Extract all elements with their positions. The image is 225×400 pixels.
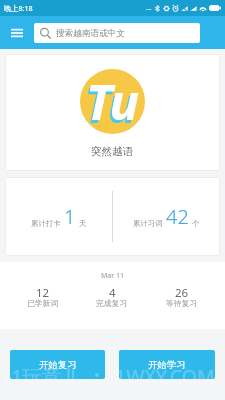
staticText: 开始学习: [148, 359, 186, 371]
button[interactable]: 26: [147, 285, 217, 311]
button[interactable]: Tu: [5, 54, 220, 171]
button[interactable]: 开始复习: [10, 350, 105, 379]
staticText: ...: [146, 3, 152, 13]
staticText: 12: [36, 285, 50, 301]
staticText: 26: [175, 285, 189, 301]
button[interactable]: Open navigation menu: [6, 22, 28, 44]
staticText: 完成复习: [96, 298, 128, 308]
staticText: 开始复习: [39, 359, 77, 371]
staticText: 1: [64, 203, 76, 230]
staticText: 晚上8:18: [4, 3, 33, 13]
staticText: 1WXY.COM: [115, 363, 215, 390]
staticText: 天: [79, 219, 87, 228]
staticText: 4: [109, 285, 116, 301]
staticText: Mar 11: [0, 271, 225, 281]
staticText: 等待复习: [166, 298, 198, 308]
staticText: 累计打卡: [31, 219, 61, 228]
staticText: 搜索越南语或中文: [56, 28, 125, 39]
staticText: 突然越语: [91, 145, 134, 158]
button[interactable]: 累计打卡: [5, 177, 112, 256]
staticText: 已学新词: [27, 298, 59, 308]
button[interactable]: 开始学习: [119, 350, 215, 379]
button[interactable]: 累计习词: [113, 177, 220, 256]
button[interactable]: 12: [8, 285, 77, 311]
staticText: 42: [166, 203, 189, 230]
button[interactable]: 搜索越南语或中文: [34, 23, 200, 43]
staticText: 11玩意儿: [0, 363, 81, 390]
staticText: 个: [192, 219, 200, 228]
staticText: Tu: [86, 69, 140, 133]
button[interactable]: 4: [77, 285, 147, 311]
staticText: Tu: [84, 71, 138, 134]
staticText: 累计习词: [133, 219, 163, 228]
